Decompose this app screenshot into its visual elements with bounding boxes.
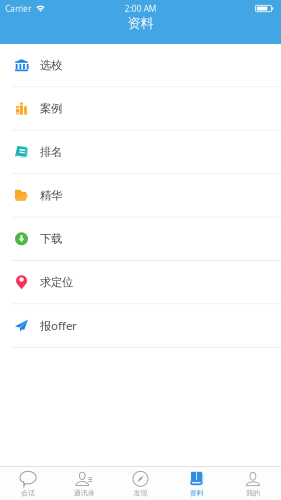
staticText: 会话	[21, 489, 35, 498]
button[interactable]: 会话	[0, 466, 56, 500]
staticText: 2:00 AM	[124, 3, 156, 14]
staticText: 报offer	[40, 318, 77, 333]
staticText: 选校	[40, 58, 62, 72]
staticText: 我的	[246, 489, 260, 498]
button[interactable]: 我的	[225, 466, 281, 500]
staticText: 精华	[40, 188, 62, 203]
staticText: 发现	[133, 489, 147, 498]
button[interactable]: 资料	[169, 466, 225, 500]
button[interactable]: 报offer	[0, 304, 281, 348]
button[interactable]: 精华	[0, 174, 281, 218]
staticText: 资料	[127, 15, 153, 32]
button[interactable]: 下载	[0, 218, 281, 261]
staticText: 下载	[40, 232, 62, 246]
button[interactable]: 求定位	[0, 261, 281, 304]
staticText: Carrier	[5, 3, 31, 14]
staticText: 求定位	[40, 275, 73, 289]
button[interactable]: 案例	[0, 87, 281, 131]
staticText: 排名	[40, 145, 62, 159]
staticText: 通讯录	[74, 489, 95, 498]
button[interactable]: 排名	[0, 131, 281, 174]
button[interactable]: 选校	[0, 44, 281, 87]
button[interactable]: 发现	[112, 466, 169, 500]
button[interactable]: 通讯录	[56, 466, 112, 500]
staticText: 案例	[40, 101, 62, 116]
staticText: 资料	[190, 489, 204, 498]
